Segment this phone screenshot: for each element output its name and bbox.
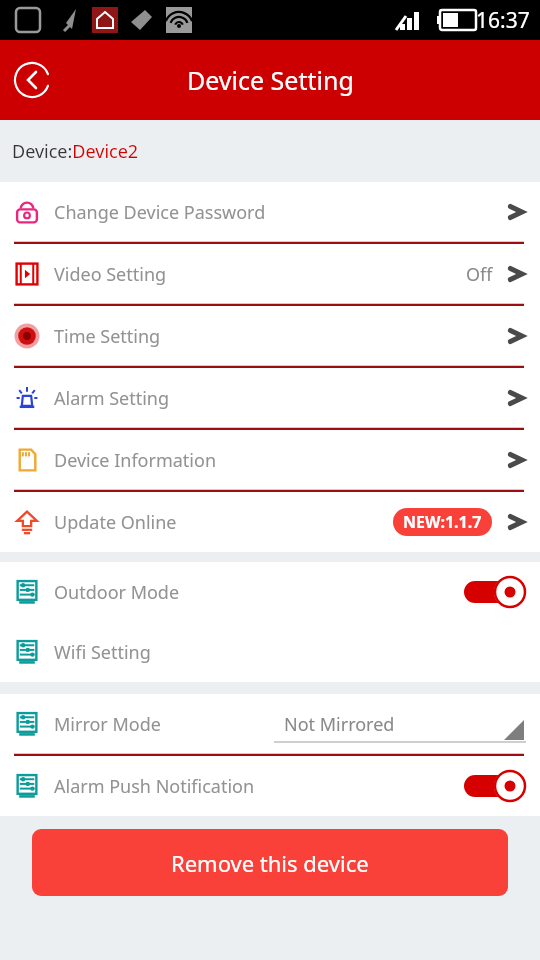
staticText: Time Setting	[54, 324, 161, 349]
staticText: Device Setting	[187, 63, 354, 97]
button[interactable]: Alarm Push Notification	[0, 756, 540, 816]
button[interactable]: Video Setting	[0, 244, 540, 306]
staticText: Alarm Push Notification	[54, 774, 255, 799]
staticText: Outdoor Mode	[54, 580, 180, 605]
button[interactable]: Wifi Setting	[0, 622, 540, 682]
button[interactable]: Toggle Outdoor Mode	[464, 576, 526, 608]
button[interactable]: Alarm Setting	[0, 368, 540, 430]
button[interactable]: Change Device Password	[0, 182, 540, 244]
staticText: Not Mirrored	[284, 712, 395, 737]
staticText: Device:Device2	[12, 139, 139, 164]
staticText: Device Information	[54, 448, 217, 473]
button[interactable]: Back	[10, 58, 54, 102]
staticText: 16:37	[476, 6, 530, 35]
button[interactable]: Toggle Alarm Push Notification	[464, 770, 526, 802]
button[interactable]: Remove this device	[32, 829, 508, 896]
button[interactable]: Mirror Mode	[0, 694, 540, 756]
button[interactable]: Time Setting	[0, 306, 540, 368]
button[interactable]: Device Information	[0, 430, 540, 492]
staticText: Update Online	[54, 510, 177, 535]
button[interactable]: Outdoor Mode	[0, 562, 540, 622]
staticText: NEW:1.1.7	[403, 511, 482, 533]
staticText: Alarm Setting	[54, 386, 170, 411]
staticText: Change Device Password	[54, 200, 266, 225]
button[interactable]: Update Online	[0, 492, 540, 552]
staticText: Remove this device	[171, 848, 369, 878]
staticText: Mirror Mode	[54, 712, 161, 737]
staticText: Video Setting	[54, 262, 167, 287]
staticText: Off	[466, 262, 493, 287]
staticText: Wifi Setting	[54, 640, 151, 665]
